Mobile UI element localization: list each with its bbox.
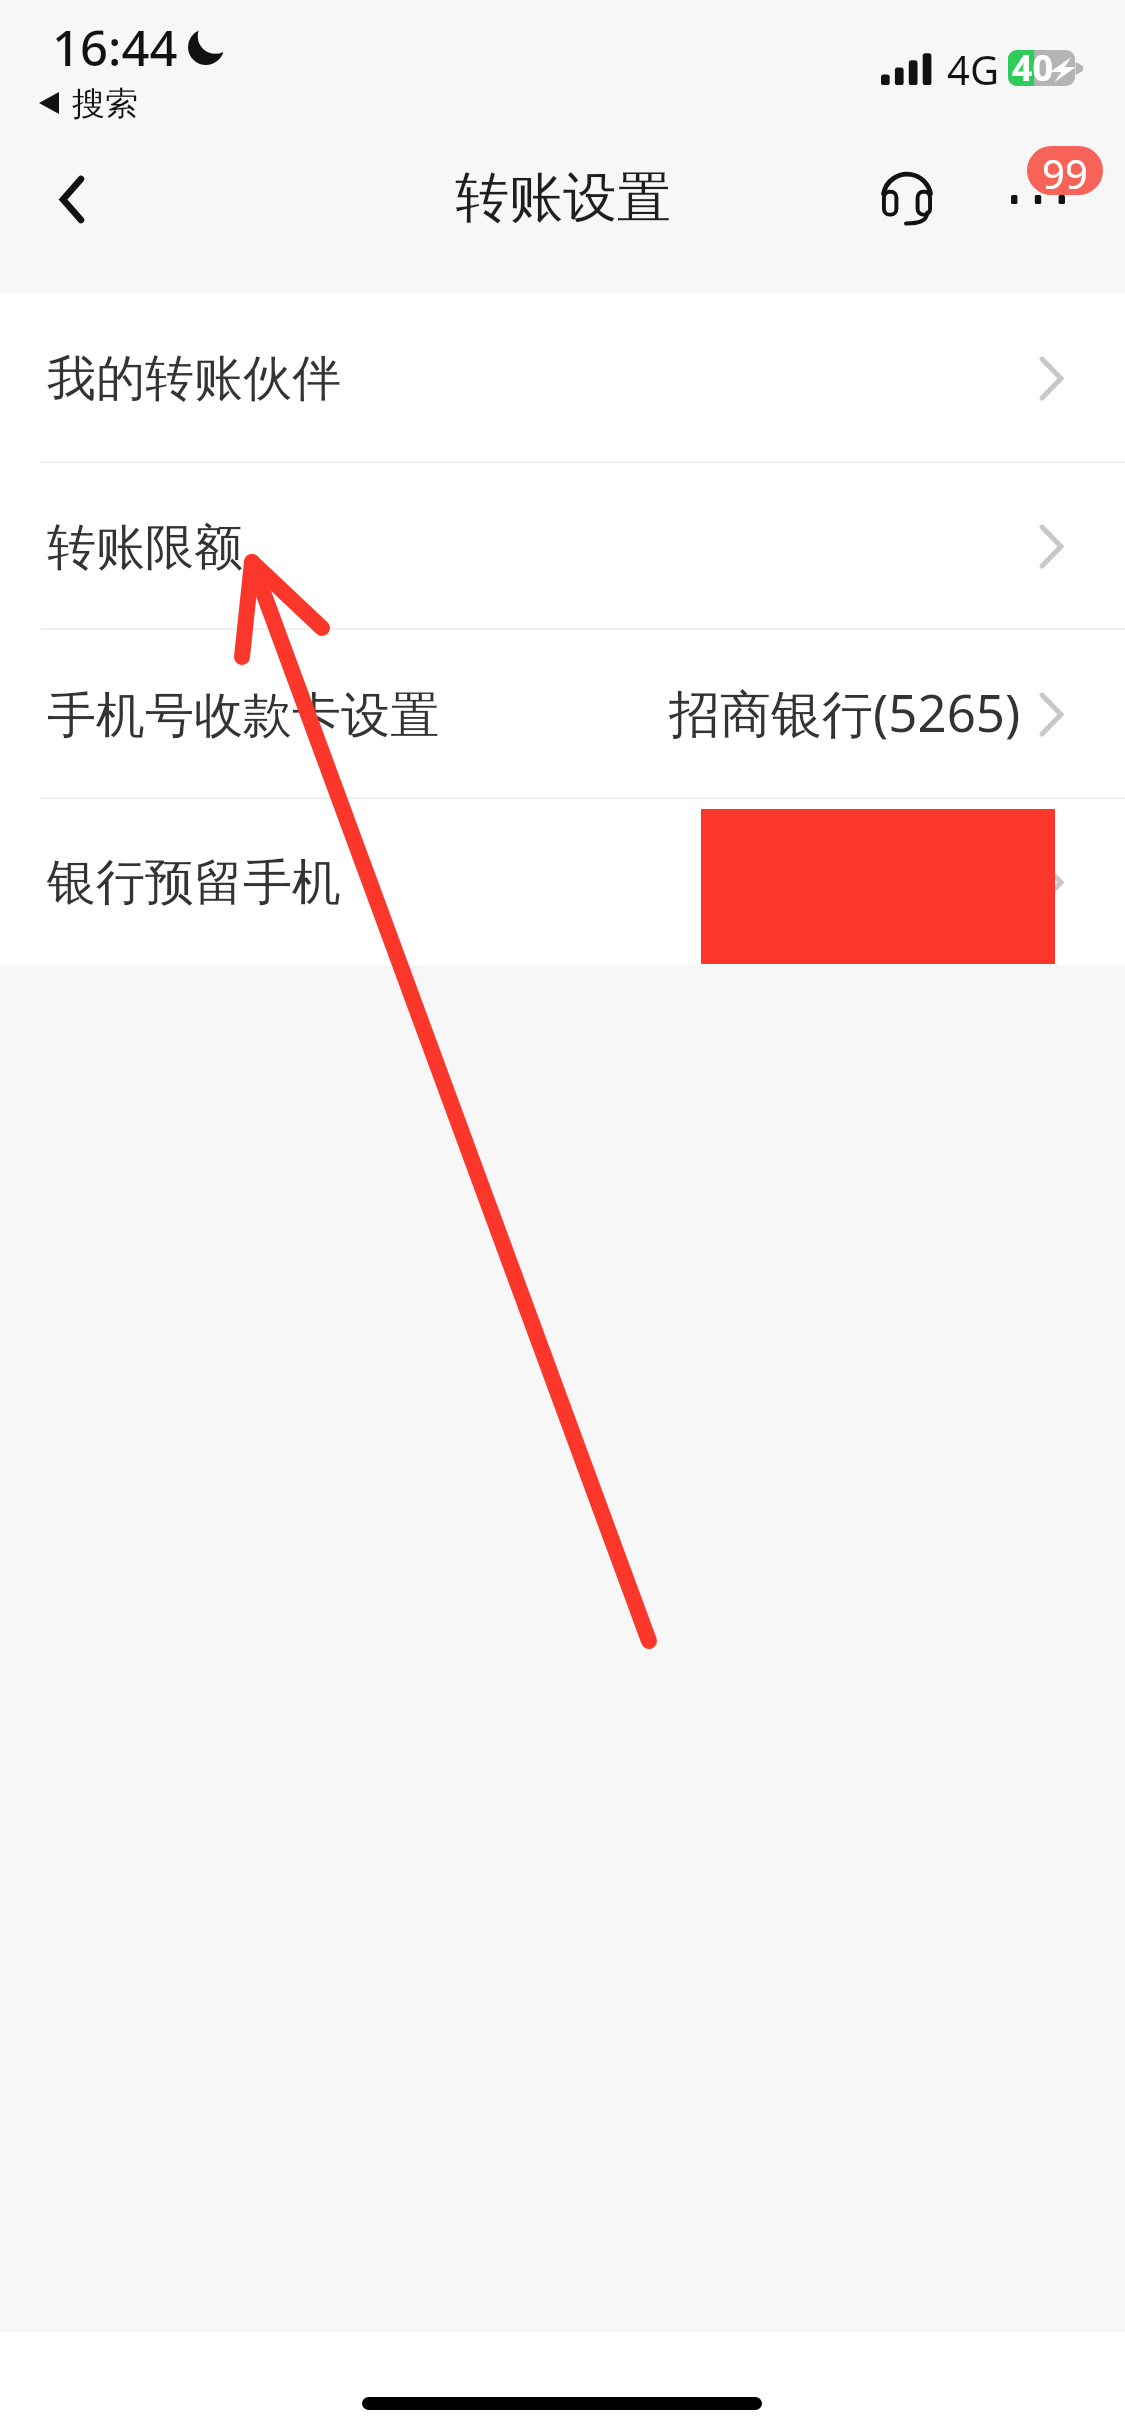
button[interactable]: 银行预留手机 (0, 799, 1125, 965)
staticText: 银行预留手机 (47, 852, 341, 914)
button[interactable]: 我的转账伙伴 (0, 293, 1125, 463)
staticText: 招商银行(5265) (669, 677, 1021, 747)
staticText: 99 (1042, 146, 1088, 195)
button[interactable]: Back (22, 155, 110, 243)
button[interactable]: Customer service (862, 154, 950, 242)
button[interactable]: More options (993, 155, 1083, 243)
staticText: 手机号收款卡设置 (47, 685, 439, 747)
button[interactable]: 搜索 (39, 82, 138, 122)
staticText: 搜索 (72, 83, 138, 123)
staticText: 我的转账伙伴 (47, 348, 341, 410)
button[interactable]: 手机号收款卡设置 (0, 630, 1125, 799)
staticText: 4G (947, 42, 999, 96)
staticText: 转账设置 (455, 164, 671, 232)
staticText: 16:44 (52, 14, 178, 81)
staticText: 转账限额 (47, 517, 243, 579)
button[interactable]: 转账限额 (0, 463, 1125, 630)
staticText: 40 (1012, 43, 1054, 92)
